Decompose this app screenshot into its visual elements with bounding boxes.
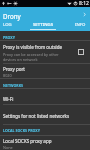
button[interactable]: Local SOCKS proxy app (0, 138, 90, 144)
button[interactable]: More options (78, 8, 90, 20)
staticText: Proxy port (3, 66, 25, 72)
staticText: Proxy can be accessed by other (3, 52, 59, 57)
button[interactable]: PROXY (0, 35, 90, 40)
button[interactable]: NETWORKS (0, 83, 90, 88)
staticText: PROXY (3, 35, 16, 40)
button[interactable]: INFO (70, 20, 90, 31)
staticText: 8:12 (79, 0, 89, 7)
button[interactable]: Settings for not listed networks (0, 113, 90, 119)
staticText: Wi-Fi (3, 96, 14, 102)
staticText: 8020 (3, 73, 12, 78)
button[interactable]: SETTINGS (30, 20, 56, 31)
staticText: Settings for not listed networks (3, 113, 70, 119)
staticText: Local SOCKS proxy app (3, 138, 52, 144)
staticText: SETTINGS (33, 21, 54, 27)
staticText: Drony (3, 12, 21, 20)
button[interactable]: LOG (0, 20, 15, 31)
staticText: devices on network (3, 57, 38, 62)
button[interactable]: Wi-Fi (0, 96, 90, 102)
staticText: LOG (3, 21, 12, 27)
button[interactable]: LOCAL SOCKS PROXY (0, 128, 90, 133)
staticText: LOCAL SOCKS PROXY (3, 128, 40, 133)
staticText: Proxy is visible from outside (3, 44, 63, 50)
staticText: None (3, 145, 13, 150)
staticText: NETWORKS (3, 83, 24, 88)
button[interactable]: Proxy is visible from outside (0, 44, 90, 50)
button[interactable]: Proxy is visible from outside (78, 49, 84, 55)
staticText: INFO (75, 21, 86, 27)
button[interactable]: Proxy port (0, 66, 90, 72)
